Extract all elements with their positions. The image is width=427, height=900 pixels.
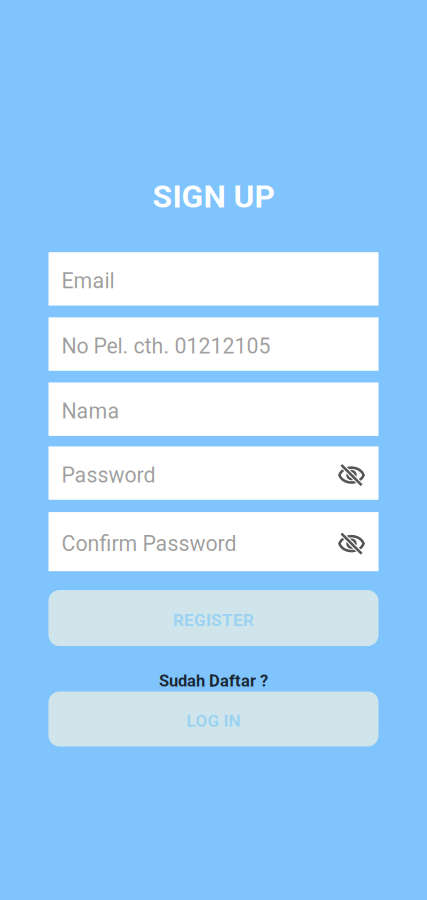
- button[interactable]: Show Password: [331, 446, 367, 500]
- button[interactable]: Show Confirm Password: [331, 512, 367, 571]
- staticText: Email: [61, 268, 114, 293]
- staticText: Confirm Password: [61, 531, 236, 556]
- staticText: Nama: [61, 399, 119, 424]
- button[interactable]: Confirm Password: [48, 512, 378, 571]
- button[interactable]: Email: [48, 252, 378, 306]
- staticText: LOG IN: [186, 711, 240, 731]
- button[interactable]: LOG IN: [48, 691, 378, 746]
- staticText: Sudah Daftar ?: [159, 671, 268, 690]
- button[interactable]: REGISTER: [48, 590, 378, 646]
- staticText: No Pel. cth. 01212105: [61, 334, 270, 359]
- button[interactable]: No Pel. cth. 01212105: [48, 317, 378, 371]
- button[interactable]: Nama: [48, 382, 378, 436]
- button[interactable]: Password: [48, 446, 378, 500]
- staticText: SIGN UP: [152, 178, 274, 215]
- staticText: Password: [61, 463, 155, 488]
- staticText: REGISTER: [173, 610, 254, 630]
